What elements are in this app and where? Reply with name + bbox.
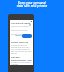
button[interactable]: Learn more bbox=[15, 34, 25, 36]
staticText: Keep your personal data safe and private bbox=[15, 1, 49, 8]
staticText: Your data in Search bbox=[11, 22, 32, 25]
staticText: Choose the privacy settings that are rig… bbox=[11, 44, 32, 54]
staticText: Data and personalisation bbox=[11, 56, 32, 61]
staticText: Control what Google saves and how your a… bbox=[11, 25, 32, 36]
staticText: Review and adjust what is saved in your … bbox=[11, 59, 32, 65]
button[interactable]: More bbox=[28, 59, 33, 61]
button[interactable]: Manage your data bbox=[22, 34, 32, 38]
staticText: Privacy Check-up bbox=[11, 41, 32, 44]
